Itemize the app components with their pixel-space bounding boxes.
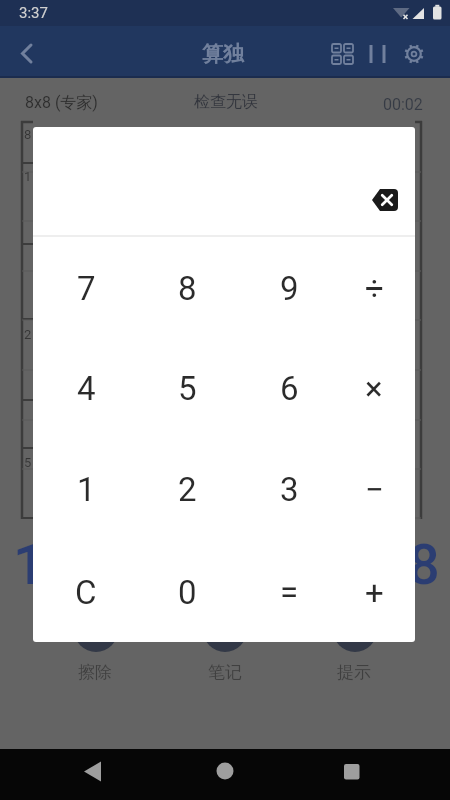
staticText: 2: [178, 470, 197, 509]
button[interactable]: [360, 38, 392, 70]
staticText: 1: [77, 470, 96, 509]
staticText: 笔记: [208, 662, 242, 683]
staticText: +: [365, 573, 384, 612]
staticText: 3: [280, 470, 299, 509]
staticText: 7: [77, 269, 96, 308]
staticText: 擦除: [78, 662, 112, 683]
button[interactable]: 6: [244, 340, 334, 436]
staticText: 2: [24, 327, 32, 342]
staticText: 4: [77, 369, 96, 408]
staticText: 5: [178, 369, 197, 408]
staticText: 8: [24, 127, 32, 142]
staticText: 00:02: [383, 95, 423, 114]
staticText: 8: [178, 269, 197, 308]
staticText: 3:37: [19, 4, 48, 22]
button[interactable]: [329, 752, 375, 796]
staticText: 1: [24, 169, 32, 184]
button[interactable]: 1: [41, 441, 131, 537]
button[interactable]: [361, 176, 409, 224]
staticText: 0: [178, 573, 197, 612]
button[interactable]: 0: [142, 544, 232, 640]
button[interactable]: ÷: [329, 240, 415, 336]
staticText: ÷: [365, 269, 384, 308]
staticText: =: [280, 573, 299, 612]
staticText: 1: [13, 532, 45, 592]
button[interactable]: 7: [41, 240, 131, 336]
staticText: C: [75, 573, 97, 612]
staticText: 检查无误: [194, 92, 258, 112]
button[interactable]: +: [329, 544, 415, 640]
button[interactable]: [396, 38, 432, 70]
button[interactable]: 8: [142, 240, 232, 336]
staticText: 6: [280, 369, 299, 408]
staticText: ×: [365, 369, 383, 408]
button[interactable]: [70, 752, 116, 796]
button[interactable]: 4: [41, 340, 131, 436]
staticText: 8x8 (专家): [25, 93, 98, 113]
button[interactable]: ×: [329, 340, 415, 436]
staticText: −: [365, 470, 384, 509]
staticText: 提示: [337, 662, 371, 683]
staticText: 5: [24, 455, 32, 470]
button[interactable]: 2: [142, 441, 232, 537]
button[interactable]: [326, 38, 359, 70]
button[interactable]: 3: [244, 441, 334, 537]
button[interactable]: 9: [244, 240, 334, 336]
button[interactable]: [202, 752, 248, 796]
button[interactable]: C: [41, 544, 131, 640]
button[interactable]: 5: [142, 340, 232, 436]
button[interactable]: −: [329, 441, 415, 537]
button[interactable]: =: [244, 544, 334, 640]
staticText: 8: [408, 532, 440, 592]
staticText: 9: [280, 269, 299, 308]
button[interactable]: [10, 38, 46, 70]
staticText: 算独: [202, 41, 244, 67]
